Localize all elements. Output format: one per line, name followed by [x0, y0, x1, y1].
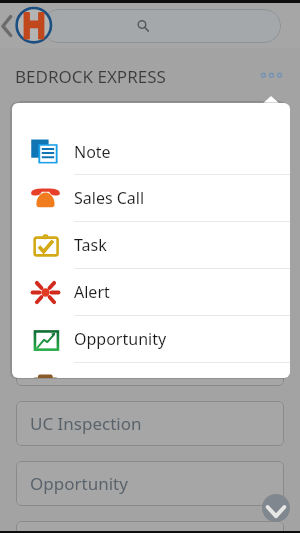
button[interactable]: Task [16, 521, 284, 533]
staticText: Task [74, 234, 107, 256]
button[interactable]: Event [16, 281, 284, 326]
staticText: Note [74, 141, 111, 163]
button[interactable]: Case [16, 221, 284, 266]
staticText: BEDROCK EXPRESS [15, 65, 166, 88]
button[interactable]: Scroll down [262, 494, 290, 522]
staticText: Opportunity [74, 328, 167, 350]
button[interactable]: Note [12, 129, 290, 175]
button[interactable]: Search [42, 9, 281, 43]
button[interactable]: Task [12, 222, 290, 268]
staticText: Sales Call [74, 187, 145, 209]
button[interactable]: Back [0, 6, 16, 42]
button[interactable]: Event [12, 363, 290, 378]
staticText: Event [30, 292, 75, 315]
button[interactable]: UC Inspection [16, 401, 284, 446]
staticText: Alert [74, 281, 110, 303]
staticText: Opportunity [30, 472, 128, 495]
button[interactable]: Sales Call [16, 341, 284, 386]
button[interactable]: Opportunity [16, 461, 284, 506]
button[interactable]: Sales Call [12, 175, 290, 221]
button[interactable]: Alert [12, 269, 290, 315]
staticText: Sales Call [30, 352, 105, 375]
staticText: Account [30, 172, 95, 195]
button[interactable]: Home [14, 5, 54, 45]
button[interactable]: Opportunity [12, 316, 290, 362]
button[interactable]: Account [16, 161, 284, 206]
button[interactable]: More options [255, 66, 288, 85]
staticText: UC Inspection [30, 412, 142, 435]
button[interactable]: Contact [16, 101, 284, 146]
staticText: Case [30, 232, 69, 255]
